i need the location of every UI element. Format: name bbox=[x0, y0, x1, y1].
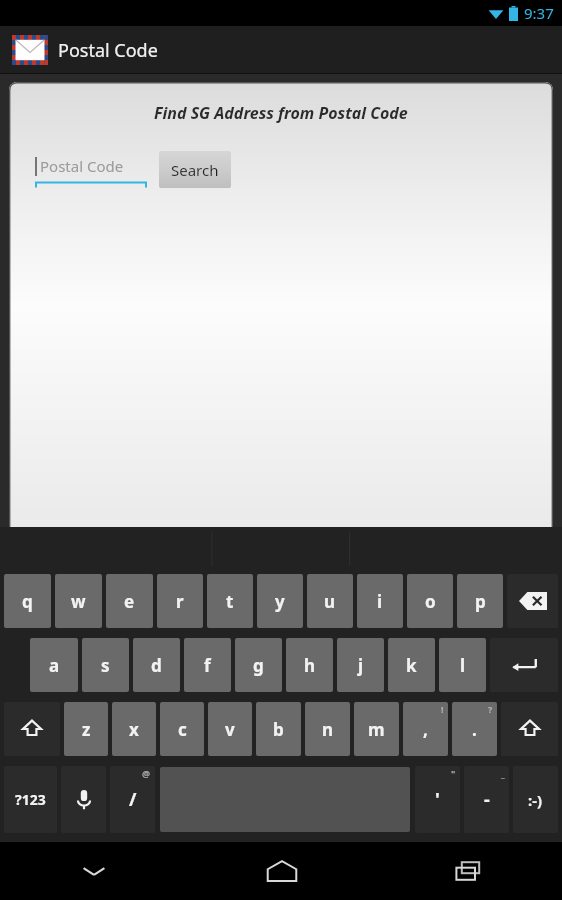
staticText: s bbox=[101, 654, 110, 677]
button[interactable]: q bbox=[4, 574, 51, 628]
staticText: d bbox=[151, 654, 162, 677]
staticText: q bbox=[22, 590, 33, 613]
button[interactable]: j bbox=[337, 638, 384, 692]
button[interactable]: Hide keyboard bbox=[0, 842, 188, 900]
button[interactable]: Search bbox=[159, 151, 231, 188]
staticText: " bbox=[451, 767, 456, 779]
staticText: _ bbox=[501, 767, 505, 779]
button[interactable]: c bbox=[160, 702, 204, 756]
button[interactable]: t bbox=[207, 574, 253, 628]
button[interactable]: u bbox=[307, 574, 353, 628]
staticText: m bbox=[368, 718, 385, 741]
button[interactable]: h bbox=[286, 638, 333, 692]
button[interactable]: v bbox=[208, 702, 252, 756]
staticText: g bbox=[253, 654, 264, 677]
staticText: Search bbox=[171, 160, 219, 180]
staticText: e bbox=[124, 590, 135, 613]
staticText: f bbox=[204, 654, 211, 677]
staticText: p bbox=[475, 590, 486, 613]
staticText: @ bbox=[142, 767, 151, 779]
staticText: o bbox=[425, 590, 436, 613]
button[interactable]: r bbox=[157, 574, 203, 628]
button[interactable]: s bbox=[82, 638, 129, 692]
button[interactable]: , bbox=[403, 702, 448, 756]
button[interactable]: e bbox=[106, 574, 153, 628]
button[interactable]: Voice input bbox=[61, 766, 106, 833]
staticText: z bbox=[82, 718, 91, 741]
staticText: - bbox=[484, 787, 490, 812]
staticText: a bbox=[49, 654, 60, 677]
button[interactable]: i bbox=[357, 574, 403, 628]
button[interactable]: f bbox=[184, 638, 231, 692]
button[interactable]: l bbox=[439, 638, 486, 692]
button[interactable]: Emoticon bbox=[513, 766, 558, 833]
staticText: Find SG Address from Postal Code bbox=[154, 102, 408, 124]
staticText: n bbox=[322, 718, 334, 741]
button[interactable]: k bbox=[388, 638, 435, 692]
button[interactable]: Recent apps bbox=[375, 842, 562, 900]
staticText: k bbox=[406, 654, 417, 677]
staticText: i bbox=[377, 590, 383, 613]
staticText: ' bbox=[435, 787, 440, 812]
button[interactable]: w bbox=[55, 574, 102, 628]
button[interactable]: y bbox=[257, 574, 303, 628]
staticText: ? bbox=[488, 703, 493, 715]
button[interactable]: Postal Code bbox=[35, 151, 147, 188]
button[interactable]: Shift bbox=[4, 702, 60, 756]
staticText: , bbox=[423, 718, 428, 741]
staticText: r bbox=[176, 590, 184, 613]
staticText: u bbox=[324, 590, 336, 613]
button[interactable]: Symbols bbox=[4, 766, 57, 833]
button[interactable]: p bbox=[457, 574, 503, 628]
staticText: w bbox=[71, 590, 86, 613]
button[interactable]: m bbox=[354, 702, 399, 756]
staticText: ! bbox=[441, 703, 444, 715]
button[interactable]: Home bbox=[188, 842, 375, 900]
staticText: x bbox=[129, 718, 139, 741]
staticText: ?123 bbox=[15, 790, 46, 809]
staticText: v bbox=[225, 718, 235, 741]
staticText: b bbox=[273, 718, 284, 741]
button[interactable]: . bbox=[452, 702, 497, 756]
button[interactable]: Slash bbox=[110, 766, 155, 833]
staticText: Postal Code bbox=[40, 156, 124, 176]
button[interactable]: z bbox=[64, 702, 108, 756]
staticText: :-) bbox=[528, 790, 543, 810]
staticText: / bbox=[129, 787, 137, 812]
staticText: Postal Code bbox=[58, 38, 158, 63]
staticText: j bbox=[358, 654, 364, 677]
button[interactable]: Apostrophe bbox=[415, 766, 460, 833]
button[interactable]: Backspace bbox=[507, 574, 558, 628]
button[interactable]: x bbox=[112, 702, 156, 756]
button[interactable]: Enter bbox=[490, 638, 558, 692]
button[interactable]: d bbox=[133, 638, 180, 692]
staticText: c bbox=[178, 718, 187, 741]
staticText: y bbox=[275, 590, 285, 613]
button[interactable]: Dash bbox=[464, 766, 509, 833]
button[interactable]: g bbox=[235, 638, 282, 692]
button[interactable]: Shift bbox=[501, 702, 558, 756]
staticText: h bbox=[304, 654, 316, 677]
button[interactable]: a bbox=[30, 638, 78, 692]
staticText: l bbox=[460, 654, 466, 677]
staticText: 9:37 bbox=[524, 3, 554, 23]
button[interactable]: o bbox=[407, 574, 453, 628]
staticText: t bbox=[226, 590, 234, 613]
button[interactable]: b bbox=[256, 702, 301, 756]
staticText: . bbox=[472, 718, 477, 741]
button[interactable]: n bbox=[305, 702, 350, 756]
